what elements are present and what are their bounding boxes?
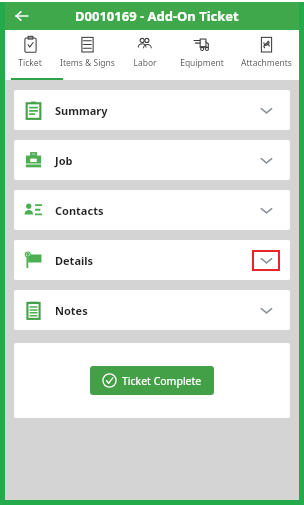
button[interactable]: Attachments xyxy=(234,30,299,80)
staticText: Notes xyxy=(55,303,88,318)
staticText: Contacts xyxy=(55,203,104,218)
staticText: Ticket xyxy=(18,57,42,69)
button[interactable]: Details xyxy=(14,240,290,280)
staticText: Job xyxy=(55,153,73,168)
staticText: Items & Signs xyxy=(60,57,115,69)
staticText: Summary xyxy=(55,103,108,118)
staticText: Equipment xyxy=(180,57,224,69)
button[interactable]: Contacts xyxy=(14,190,290,230)
button[interactable]: Notes xyxy=(14,290,290,330)
staticText: Ticket Complete xyxy=(122,374,202,388)
button[interactable]: Summary xyxy=(14,90,290,130)
staticText: Labor xyxy=(133,57,157,69)
button[interactable]: Equipment xyxy=(169,30,234,80)
button[interactable]: Back xyxy=(9,3,35,29)
staticText: D0010169 - Add-On Ticket xyxy=(75,7,239,25)
button[interactable]: Items & Signs xyxy=(55,30,120,80)
button[interactable]: Job xyxy=(14,140,290,180)
staticText: Details xyxy=(55,253,94,268)
button[interactable]: Ticket xyxy=(5,30,55,80)
staticText: Attachments xyxy=(241,57,292,69)
button[interactable]: Ticket Complete xyxy=(90,366,214,395)
button[interactable]: Labor xyxy=(120,30,169,80)
